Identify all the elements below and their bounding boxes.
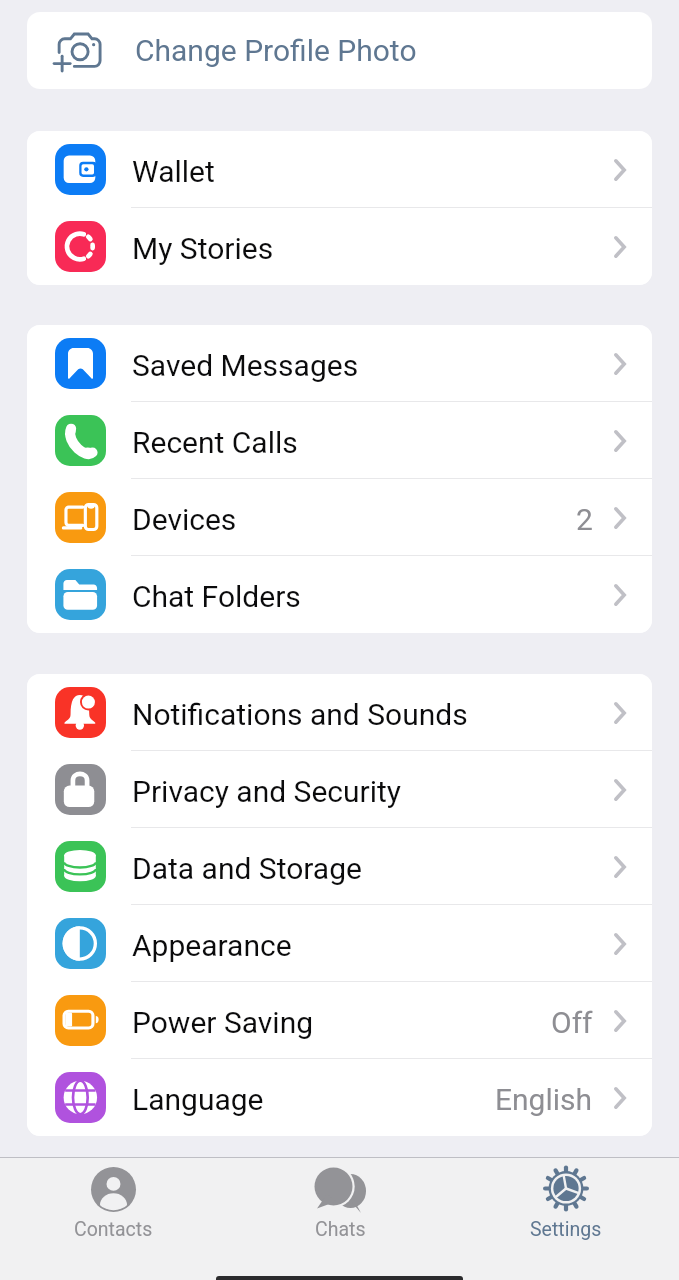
staticText: Recent Calls [132,425,298,460]
button[interactable]: Data and Storage [27,828,652,905]
button[interactable]: Contacts [0,1158,227,1280]
staticText: Wallet [132,154,215,189]
button[interactable]: Power Saving [27,982,652,1059]
staticText: Devices [132,502,237,537]
staticText: Change Profile Photo [135,33,417,68]
staticText: Privacy and Security [132,774,402,809]
button[interactable]: Recent Calls [27,402,652,479]
button[interactable]: Saved Messages [27,325,652,402]
button[interactable]: Chats [227,1158,453,1280]
staticText: Saved Messages [132,348,359,383]
button[interactable]: Appearance [27,905,652,982]
button[interactable]: Language [27,1059,652,1136]
staticText: Notifications and Sounds [132,697,468,732]
staticText: 2 [576,502,593,537]
staticText: English [495,1082,593,1117]
staticText: Off [551,1005,593,1040]
staticText: Language [132,1082,264,1117]
button[interactable]: Devices [27,479,652,556]
staticText: My Stories [132,231,274,266]
staticText: Power Saving [132,1005,314,1040]
button[interactable]: Notifications and Sounds [27,674,652,751]
staticText: Chat Folders [132,579,301,614]
staticText: Settings [530,1218,602,1241]
button[interactable]: Change Profile Photo [27,12,652,89]
staticText: Data and Storage [132,851,362,886]
button[interactable]: Chat Folders [27,556,652,633]
staticText: Chats [315,1218,366,1241]
button[interactable]: Privacy and Security [27,751,652,828]
button[interactable]: Wallet [27,131,652,208]
button[interactable]: My Stories [27,208,652,285]
button[interactable]: Settings [453,1158,679,1280]
staticText: Contacts [74,1218,153,1241]
staticText: Appearance [132,928,292,963]
